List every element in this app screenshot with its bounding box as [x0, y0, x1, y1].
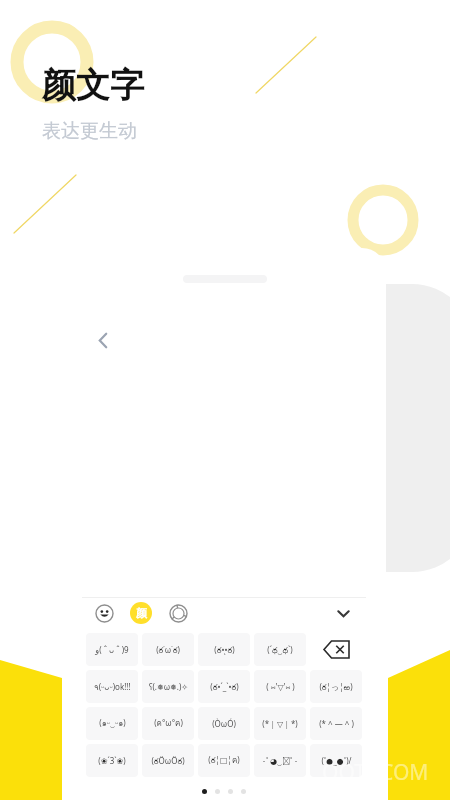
button[interactable]: 颜 [130, 602, 152, 624]
staticText: ٩(ᵕᴗᵕ)ok!!! [94, 681, 131, 692]
button[interactable]: ٩(ᵕᴗᵕ)ok!!! [86, 670, 138, 703]
button[interactable]: ･ﾟ◕‿◕ﾟ･ [254, 744, 306, 777]
staticText: (* ^ ― ^ ) [319, 718, 354, 729]
button[interactable]: (´థ‿థ`) [254, 633, 306, 666]
button[interactable]: (ఠÖωÖఠ) [142, 744, 194, 777]
staticText: ( ⑅'▽'⑅ ) [266, 681, 295, 692]
staticText: QQTF.COM [322, 758, 429, 787]
staticText: (❀´3`❀) [98, 755, 126, 766]
staticText: 表达更生动 [42, 119, 137, 143]
staticText: (ఠ¦っ¦ఱ) [319, 681, 353, 693]
button[interactable]: Emoji [92, 601, 116, 625]
button[interactable]: (*｜▽｜*) [254, 707, 306, 740]
button[interactable]: (* ^ ― ^ ) [310, 707, 362, 740]
button[interactable]: Aperture [166, 601, 190, 625]
staticText: 颜 [136, 606, 147, 620]
button[interactable]: ( ⑅'▽'⑅ ) [254, 670, 306, 703]
button[interactable]: و( ˆ ᴗ ˆ )9 [86, 633, 138, 666]
button[interactable]: (ఠ•ͅ•ఠ) [198, 633, 250, 666]
button[interactable]: (ఠ˙ω˙ఠ) [142, 633, 194, 666]
button[interactable]: ʕ(.❅ω❅.)✧ [142, 670, 194, 703]
staticText: (๑ᵕ‿ᵕ๑) [99, 717, 126, 730]
button[interactable]: (ฅ°ω°ฅ) [142, 707, 194, 740]
button[interactable]: (๑ᵕ‿ᵕ๑) [86, 707, 138, 740]
button[interactable]: (❀´3`❀) [86, 744, 138, 777]
button[interactable]: (ÒωÓ) [198, 707, 250, 740]
button[interactable]: Collapse keyboard [328, 598, 358, 628]
staticText: 颜文字 [42, 64, 144, 107]
staticText: (ఠ˙ω˙ఠ) [156, 644, 180, 656]
staticText: (ÒωÓ) [212, 718, 236, 729]
staticText: ʕ(.❅ω❅.)✧ [149, 681, 188, 692]
staticText: (*｜▽｜*) [262, 718, 298, 729]
button[interactable]: (ఠ¦□¦ฅ) [198, 744, 250, 777]
button[interactable]: (˚●_●˚)/ [310, 744, 362, 777]
staticText: ･ﾟ◕‿◕ﾟ･ [262, 755, 298, 766]
button[interactable]: (ఠ¦っ¦ఱ) [310, 670, 362, 703]
staticText: (ఠÖωÖఠ) [151, 755, 185, 767]
staticText: (˚●_●˚)/ [321, 755, 352, 766]
staticText: (ఠ•ˊ_ˋ•ఠ) [210, 681, 239, 693]
button[interactable]: Backspace [310, 633, 362, 666]
staticText: و( ˆ ᴗ ˆ )9 [95, 644, 129, 655]
staticText: (´థ‿థ`) [267, 644, 293, 656]
button[interactable]: Back [86, 323, 120, 357]
staticText: (ఠ•ͅ•ఠ) [214, 644, 235, 656]
staticText: (ఠ¦□¦ฅ) [208, 754, 240, 767]
staticText: (ฅ°ω°ฅ) [154, 717, 183, 730]
button[interactable]: (ఠ•ˊ_ˋ•ఠ) [198, 670, 250, 703]
